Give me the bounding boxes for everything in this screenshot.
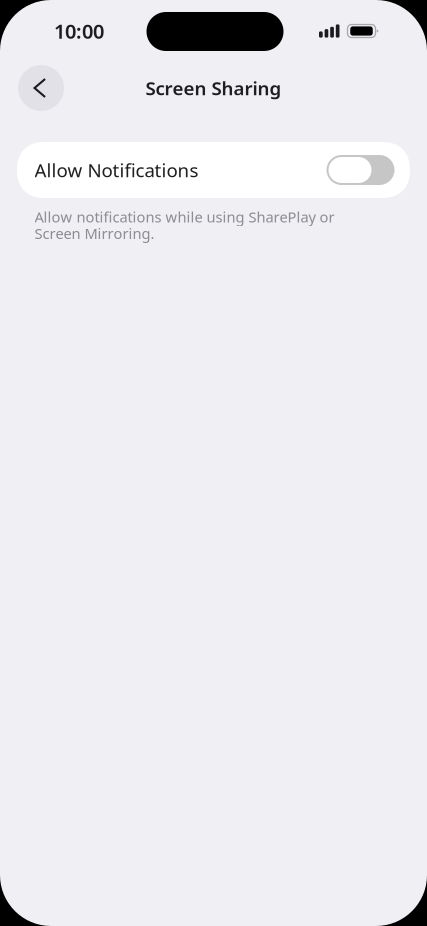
button[interactable]: Allow Notifications bbox=[17, 142, 410, 198]
staticText: Screen Sharing bbox=[145, 76, 281, 100]
button[interactable]: Back bbox=[18, 65, 64, 111]
staticText: 10:00 bbox=[54, 18, 104, 44]
button[interactable]: Off bbox=[326, 155, 394, 185]
staticText: Allow Notifications bbox=[34, 158, 198, 182]
staticText: Allow notifications while using SharePla… bbox=[34, 207, 334, 243]
